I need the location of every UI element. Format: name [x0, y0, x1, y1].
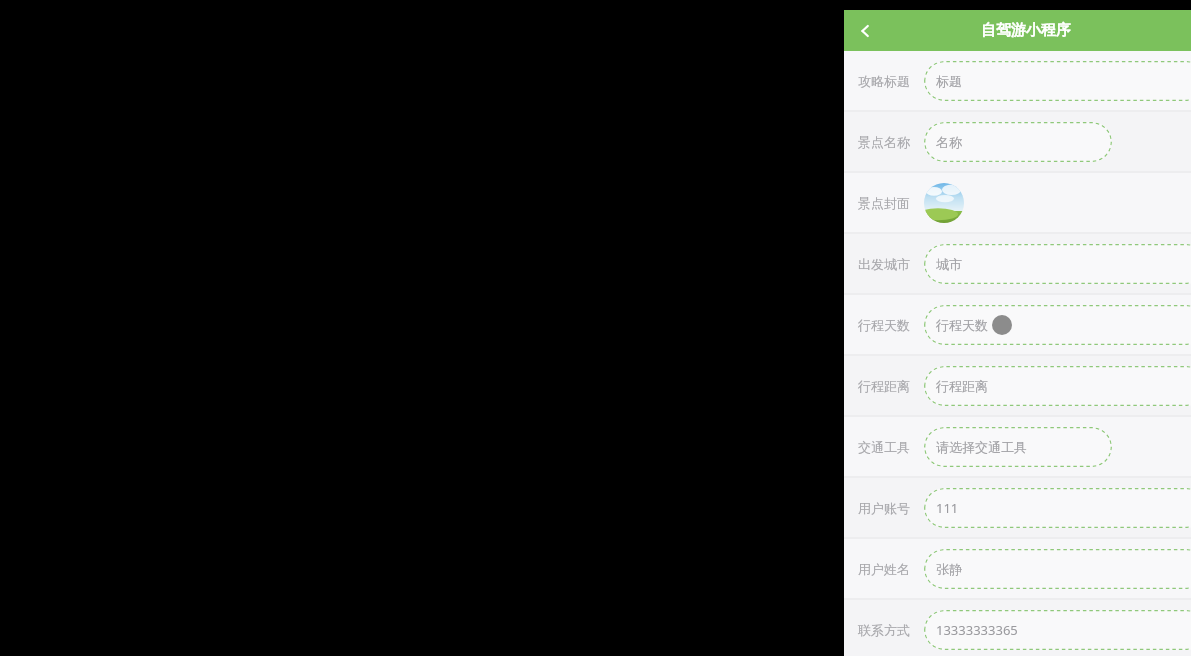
- button[interactable]: 张静: [924, 549, 1191, 589]
- staticText: 城市: [936, 256, 962, 272]
- staticText: 用户账号: [858, 500, 910, 516]
- staticText: 13333333365: [936, 621, 1018, 639]
- button[interactable]: 13333333365: [924, 610, 1191, 650]
- staticText: 行程距离: [936, 378, 988, 394]
- button[interactable]: 行程天数: [844, 295, 1191, 354]
- button[interactable]: 景点封面: [924, 183, 964, 223]
- button[interactable]: 城市: [924, 244, 1191, 284]
- staticText: 用户姓名: [858, 561, 910, 577]
- button[interactable]: 请选择交通工具: [924, 427, 1112, 467]
- button[interactable]: 景点名称: [844, 112, 1191, 171]
- staticText: 标题: [936, 73, 962, 89]
- button[interactable]: 交通工具: [844, 417, 1191, 476]
- staticText: 景点封面: [858, 195, 910, 211]
- button[interactable]: 出发城市: [844, 234, 1191, 293]
- staticText: 行程天数: [936, 317, 988, 333]
- staticText: 张静: [936, 561, 962, 577]
- button[interactable]: 行程天数: [924, 305, 1191, 345]
- staticText: 景点名称: [858, 134, 910, 150]
- staticText: 攻略标题: [858, 73, 910, 89]
- staticText: 联系方式: [858, 622, 910, 638]
- button[interactable]: 用户账号: [844, 478, 1191, 537]
- button[interactable]: 用户姓名: [844, 539, 1191, 598]
- button[interactable]: 111: [924, 488, 1191, 528]
- staticText: 111: [936, 499, 959, 517]
- staticText: 交通工具: [858, 439, 910, 455]
- button[interactable]: 行程距离: [924, 366, 1191, 406]
- button[interactable]: 攻略标题: [844, 51, 1191, 110]
- button[interactable]: 景点封面: [844, 173, 1191, 232]
- staticText: 自驾游小程序: [981, 21, 1071, 40]
- staticText: 请选择交通工具: [936, 439, 1027, 455]
- staticText: 行程距离: [858, 378, 910, 394]
- staticText: 行程天数: [858, 317, 910, 333]
- staticText: 名称: [936, 134, 962, 150]
- button[interactable]: 名称: [924, 122, 1112, 162]
- button[interactable]: Back: [848, 13, 884, 49]
- button[interactable]: 联系方式: [844, 600, 1191, 656]
- button[interactable]: 标题: [924, 61, 1191, 101]
- staticText: 出发城市: [858, 256, 910, 272]
- button[interactable]: 行程距离: [844, 356, 1191, 415]
